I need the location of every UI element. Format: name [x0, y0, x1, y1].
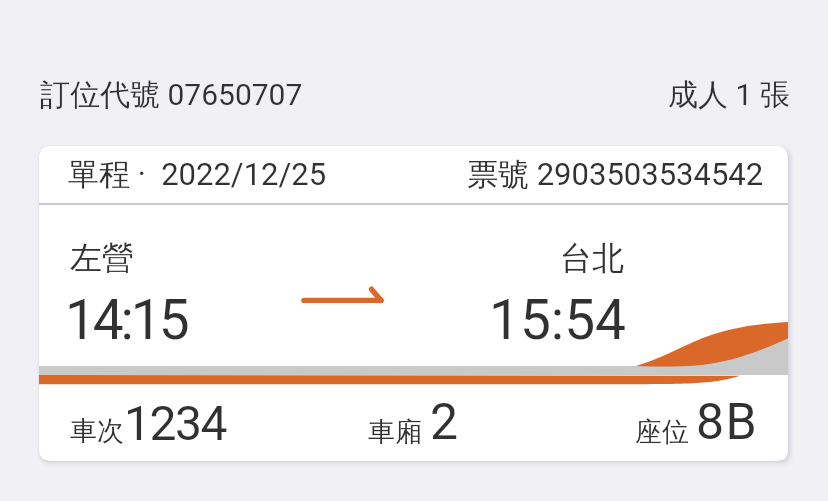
staticText: 車廂 — [368, 415, 422, 449]
staticText: 1234 — [124, 395, 226, 451]
staticText: 左營 — [70, 238, 134, 278]
staticText: 車次 — [70, 414, 124, 448]
staticText: 成人 1 張 — [668, 76, 790, 114]
staticText: 單程 · 2022/12/25 — [68, 155, 327, 194]
staticText: 票號 2903503534542 — [467, 155, 764, 194]
staticText: 台北 — [560, 238, 624, 278]
button[interactable]: 單程 · 2022/12/25 — [39, 146, 788, 461]
staticText: 15:54 — [489, 288, 626, 352]
staticText: 2 — [430, 393, 459, 452]
staticText: 14:15 — [65, 288, 187, 352]
staticText: 訂位代號 07650707 — [40, 76, 303, 114]
staticText: 座位 — [635, 415, 689, 449]
staticText: 8B — [696, 393, 759, 452]
